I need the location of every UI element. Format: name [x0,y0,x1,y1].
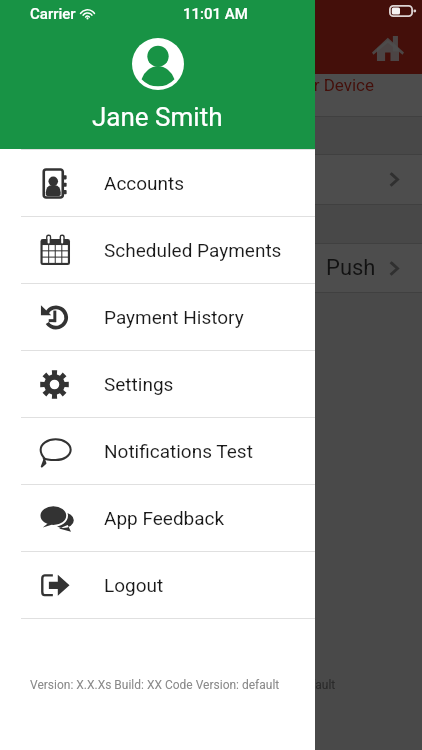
button[interactable]: Settings [0,351,315,417]
staticText: Please enable Push Notifications in your… [16,75,422,115]
button[interactable]: Payment History [0,284,315,350]
staticText: App Feedback [104,507,225,529]
staticText: Carrier [30,5,76,23]
staticText: Scheduled Payments [104,239,282,261]
staticText: Accounts [104,172,185,194]
staticText: Payment History [104,306,244,328]
button[interactable]: Logout [0,552,315,618]
button[interactable]: Notifications Test [0,418,315,484]
staticText: Version: X.X.Xs Build: XX Code Version: … [30,678,280,692]
other: Battery [389,5,416,17]
button[interactable]: Home [366,26,410,70]
button[interactable]: Scheduled Payments [0,217,315,283]
staticText: Settings [104,373,174,395]
button[interactable]: Push [0,244,422,292]
button[interactable]: App Feedback [0,485,315,551]
staticText: Logout [104,574,164,596]
staticText: Alerts [16,169,67,191]
button[interactable]: Accounts [0,150,315,216]
staticText: Notifications Test [104,440,253,462]
staticText: Push [326,255,376,281]
staticText: 11:01 AM [183,5,248,23]
button[interactable]: Alerts [0,155,422,204]
staticText: Jane Smith [92,102,223,132]
staticText: Version: X.X.Xs Build: XX Code Version: … [86,678,336,692]
